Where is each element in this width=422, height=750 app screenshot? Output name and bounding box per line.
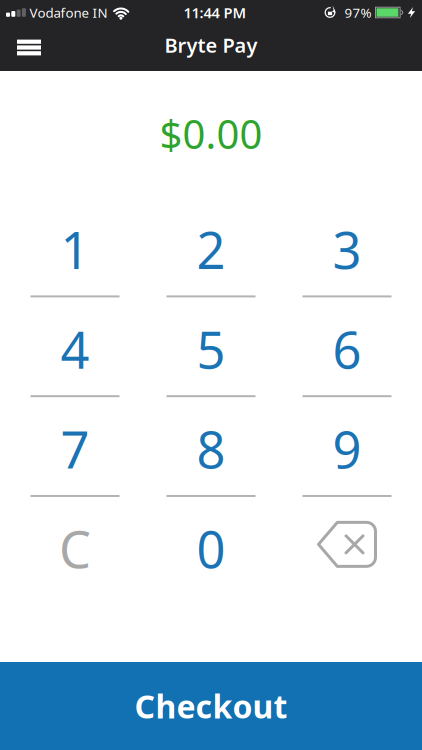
button[interactable]: C [7,515,143,582]
button[interactable]: Delete [279,522,415,575]
button[interactable]: 9 [279,415,415,497]
staticText: 0 [196,515,225,582]
staticText: 11:44 PM [183,3,246,22]
staticText: 8 [196,415,225,482]
staticText: 9 [332,415,361,482]
staticText: Checkout [134,685,287,727]
staticText: $0.00 [159,107,262,160]
staticText: 3 [332,216,361,283]
button[interactable]: 6 [279,315,415,397]
staticText: 7 [60,415,89,482]
button[interactable]: 3 [279,216,415,297]
button[interactable]: 0 [143,515,279,582]
button[interactable]: 8 [143,415,279,497]
button[interactable]: Checkout [0,662,422,750]
staticText: 2 [196,216,225,283]
button[interactable]: Menu [0,30,41,65]
button[interactable]: 4 [7,315,143,397]
staticText: Vodafone IN [29,4,107,21]
staticText: 4 [60,315,89,383]
staticText: Bryte Pay [164,32,257,58]
button[interactable]: 5 [143,315,279,397]
button[interactable]: 1 [7,216,143,297]
staticText: 1 [60,216,89,283]
staticText: 6 [332,315,361,383]
button[interactable]: 7 [7,415,143,497]
staticText: 97% [344,4,371,21]
staticText: C [59,515,91,582]
button[interactable]: 2 [143,216,279,297]
staticText: 5 [196,315,225,383]
